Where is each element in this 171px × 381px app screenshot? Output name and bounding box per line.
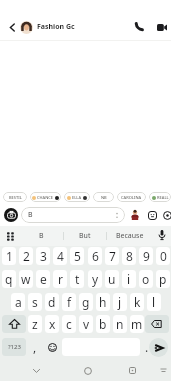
button[interactable]: 0 xyxy=(156,247,170,265)
staticText: g xyxy=(82,294,90,310)
button[interactable]: . xyxy=(142,338,152,356)
button[interactable]: f xyxy=(62,293,76,311)
button[interactable]: u xyxy=(105,270,119,288)
staticText: u xyxy=(108,271,116,287)
staticText: t xyxy=(75,271,80,287)
button[interactable] xyxy=(30,364,43,377)
staticText: w xyxy=(21,271,31,287)
staticText: x xyxy=(49,316,56,332)
button[interactable]: v xyxy=(79,315,93,333)
button[interactable]: q xyxy=(2,270,16,288)
button[interactable]: w xyxy=(19,270,33,288)
staticText: But xyxy=(79,231,91,241)
staticText: b xyxy=(99,316,107,332)
button[interactable] xyxy=(149,338,168,357)
button[interactable]: 8 xyxy=(122,247,136,265)
button[interactable] xyxy=(155,20,169,34)
button[interactable]: c xyxy=(62,315,76,333)
staticText: m xyxy=(131,316,143,332)
button[interactable]: e xyxy=(36,270,50,288)
staticText: e xyxy=(40,271,47,287)
button[interactable]: 4 xyxy=(53,247,67,265)
button[interactable] xyxy=(4,208,18,222)
button[interactable]: i xyxy=(122,270,136,288)
button[interactable] xyxy=(45,338,59,356)
staticText: o xyxy=(142,271,150,287)
staticText: NB xyxy=(101,195,107,200)
staticText: Fashion Gc xyxy=(37,22,75,32)
button[interactable]: B xyxy=(21,207,125,223)
staticText: BESTIL xyxy=(9,195,22,200)
button[interactable]: o xyxy=(139,270,153,288)
staticText: 4 xyxy=(57,248,64,264)
staticText: 6 xyxy=(92,248,99,264)
button[interactable]: ?123 xyxy=(2,338,26,356)
staticText: v xyxy=(83,316,90,332)
staticText: 8 xyxy=(126,248,133,264)
staticText: . xyxy=(145,339,149,355)
button[interactable]: y xyxy=(88,270,102,288)
staticText: B xyxy=(39,231,44,241)
button[interactable]: 6 xyxy=(88,247,102,265)
button[interactable] xyxy=(6,21,18,33)
button[interactable]: p xyxy=(156,270,170,288)
button[interactable]: 3 xyxy=(36,247,50,265)
staticText: Because xyxy=(116,231,144,241)
button[interactable]: 5 xyxy=(70,247,84,265)
button[interactable]: NB xyxy=(93,192,114,202)
staticText: 1 xyxy=(6,248,13,264)
staticText: h xyxy=(99,294,107,310)
button[interactable]: x xyxy=(45,315,59,333)
button[interactable]: 2 xyxy=(19,247,33,265)
button[interactable]: , xyxy=(28,338,42,356)
button[interactable] xyxy=(163,209,169,221)
staticText: a xyxy=(15,294,22,310)
staticText: p xyxy=(159,271,167,287)
button[interactable]: z xyxy=(28,315,42,333)
button[interactable]: CAROLINA xyxy=(117,192,146,202)
button[interactable]: B xyxy=(20,226,62,246)
button[interactable]: k xyxy=(130,293,144,311)
button[interactable]: j xyxy=(113,293,127,311)
button[interactable]: 1 xyxy=(2,247,16,265)
button[interactable]: l xyxy=(147,293,161,311)
button[interactable]: t xyxy=(70,270,84,288)
button[interactable] xyxy=(155,229,168,242)
button[interactable]: REALL xyxy=(149,192,171,202)
staticText: l xyxy=(152,294,156,310)
staticText: B xyxy=(28,210,33,220)
button[interactable]: d xyxy=(45,293,59,311)
button[interactable]: b xyxy=(96,315,110,333)
button[interactable] xyxy=(20,21,33,34)
staticText: REALL xyxy=(157,195,169,200)
button[interactable]: BESTIL xyxy=(3,192,27,202)
button[interactable] xyxy=(157,364,170,377)
staticText: , xyxy=(33,339,37,355)
button[interactable]: 7 xyxy=(105,247,119,265)
button[interactable] xyxy=(146,209,158,221)
button[interactable] xyxy=(132,20,146,34)
button[interactable] xyxy=(4,230,16,242)
button[interactable] xyxy=(126,364,139,377)
button[interactable]: s xyxy=(28,293,42,311)
staticText: i xyxy=(127,271,131,287)
button[interactable] xyxy=(145,315,169,333)
button[interactable]: 9 xyxy=(139,247,153,265)
button[interactable]: But xyxy=(64,226,106,246)
button[interactable]: r xyxy=(53,270,67,288)
staticText: 2 xyxy=(23,248,30,264)
button[interactable]: CHANCE xyxy=(30,192,61,202)
button[interactable]: h xyxy=(96,293,110,311)
staticText: 7 xyxy=(109,248,116,264)
button[interactable]: m xyxy=(130,315,144,333)
button[interactable]: n xyxy=(113,315,127,333)
staticText: 9 xyxy=(143,248,150,264)
button[interactable]: ELLA xyxy=(64,192,90,202)
button[interactable] xyxy=(129,209,141,221)
button[interactable] xyxy=(2,315,26,333)
button[interactable]: g xyxy=(79,293,93,311)
button[interactable]: Because xyxy=(107,226,153,246)
button[interactable]: a xyxy=(11,293,25,311)
button[interactable] xyxy=(81,364,94,377)
